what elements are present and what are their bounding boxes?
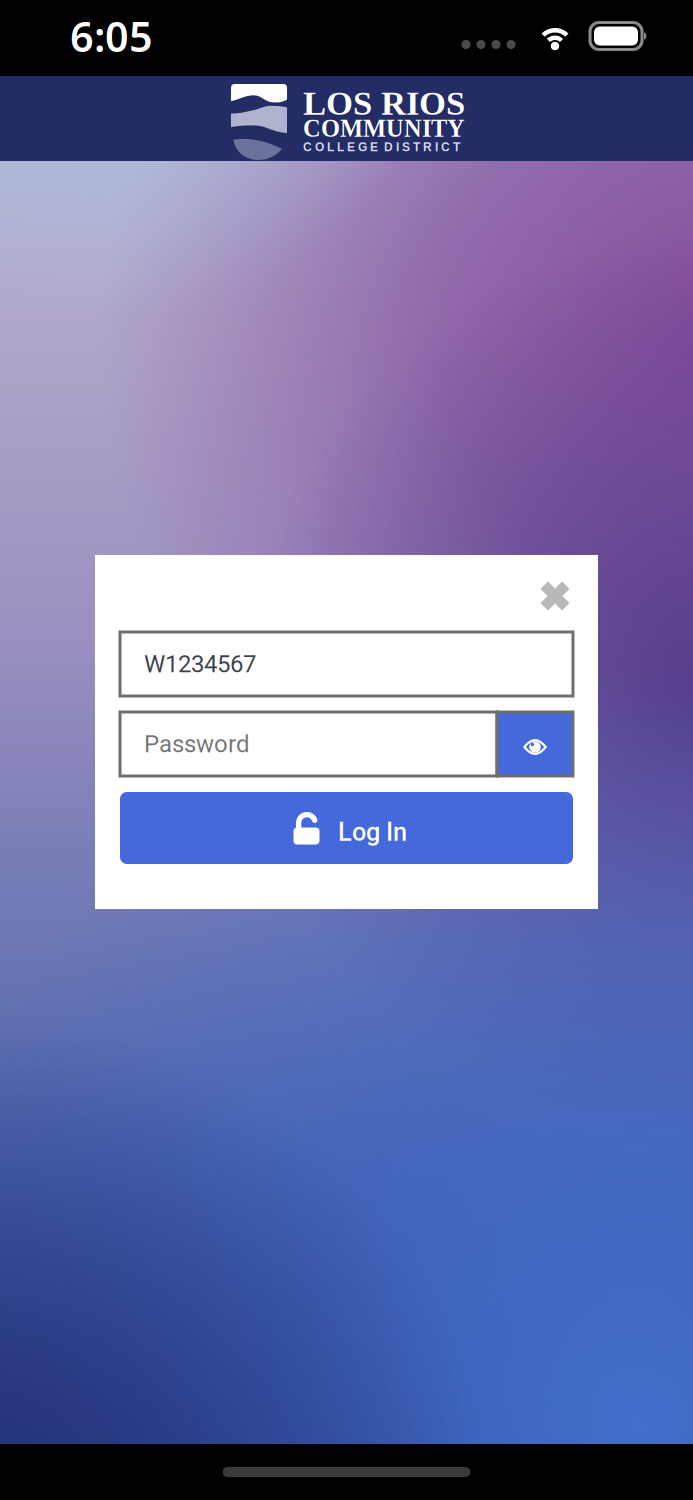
staticText: Log In (338, 817, 407, 847)
staticText: COMMUNITY (303, 115, 465, 142)
staticText: 6:05 (70, 9, 153, 63)
button[interactable]: Close (528, 569, 581, 622)
staticText: LOS RIOS (303, 84, 465, 122)
staticText: C O L L E G E D I S T R I C T (303, 140, 460, 154)
button[interactable]: Show password (497, 712, 573, 776)
staticText: W1234567 (144, 650, 256, 678)
button[interactable]: Log In (120, 792, 573, 864)
staticText: Password (144, 730, 250, 758)
